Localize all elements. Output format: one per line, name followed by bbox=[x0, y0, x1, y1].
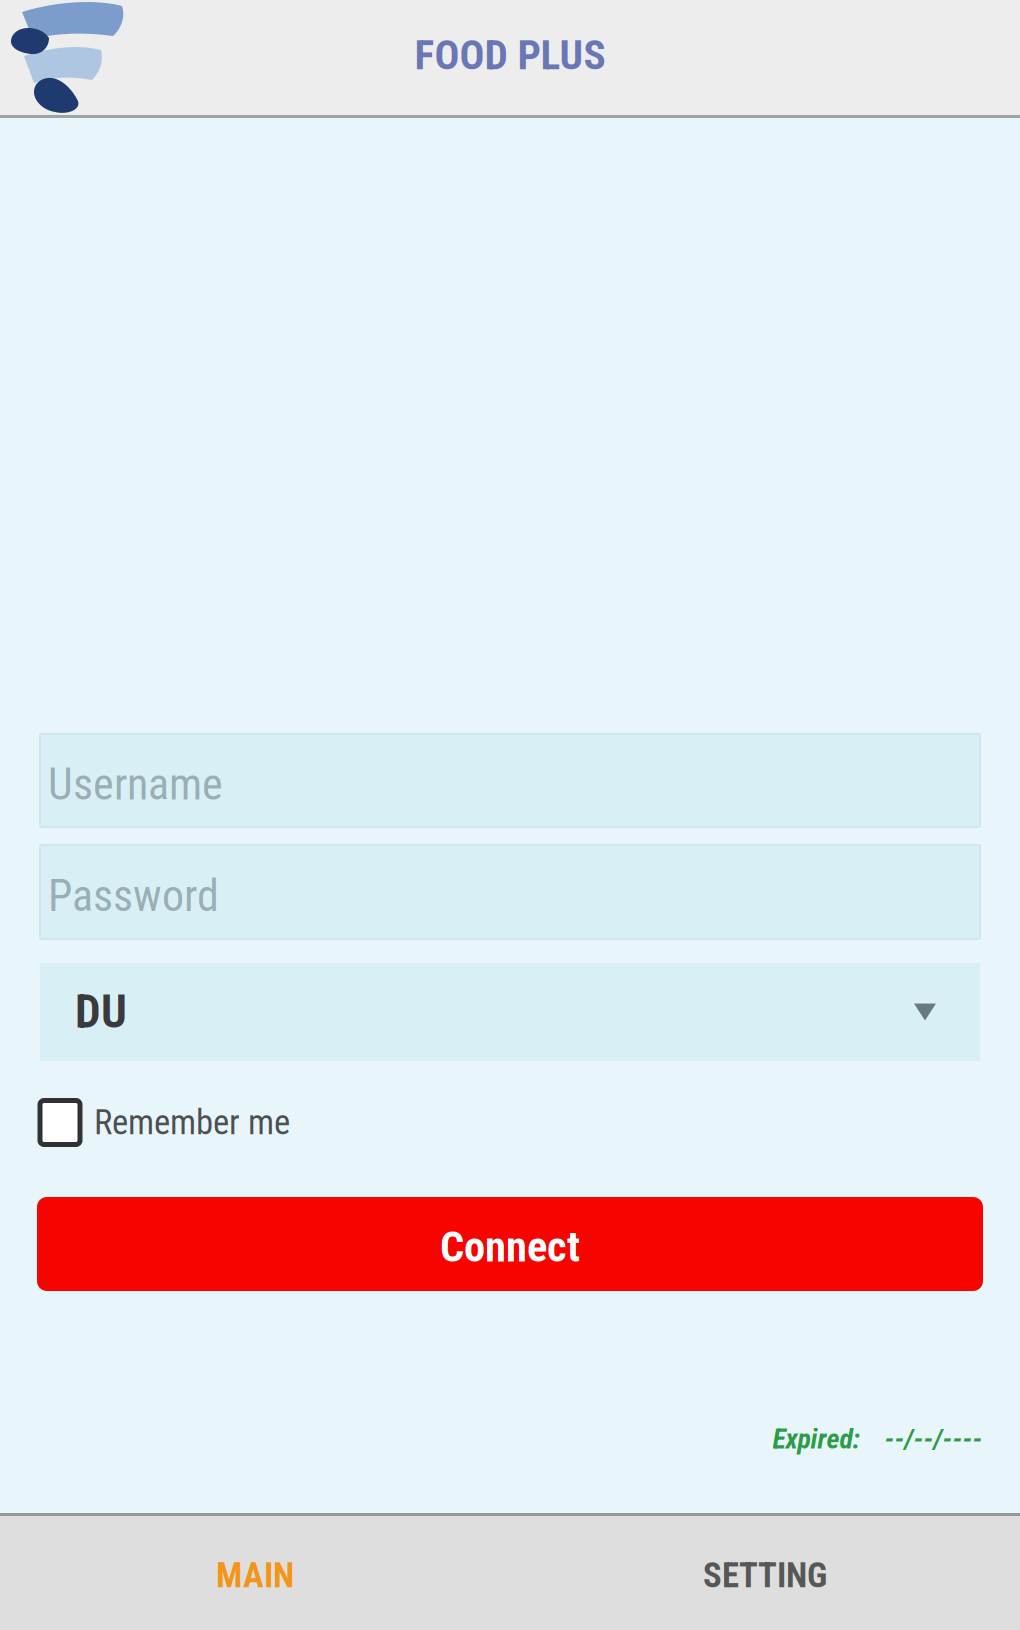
button[interactable]: Food Plus home bbox=[0, 0, 132, 118]
staticText: MAIN bbox=[216, 1555, 294, 1596]
button[interactable]: Remember me bbox=[40, 1098, 980, 1147]
button[interactable]: Username bbox=[40, 734, 980, 827]
button[interactable]: SETTING bbox=[510, 1513, 1020, 1630]
staticText: Password bbox=[48, 870, 219, 922]
staticText: Username bbox=[48, 759, 223, 810]
staticText: FOOD PLUS bbox=[414, 31, 605, 79]
button[interactable]: DU bbox=[40, 963, 980, 1061]
staticText: DU bbox=[75, 985, 127, 1038]
button[interactable]: Password bbox=[40, 845, 980, 939]
staticText: Connect bbox=[440, 1222, 580, 1272]
button[interactable]: MAIN bbox=[0, 1513, 510, 1630]
button[interactable]: Connect bbox=[37, 1197, 983, 1291]
staticText: Remember me bbox=[94, 1102, 290, 1143]
staticText: SETTING bbox=[703, 1555, 827, 1596]
staticText: Expired: bbox=[772, 1423, 860, 1455]
staticText: --/--/---- bbox=[860, 1423, 982, 1455]
